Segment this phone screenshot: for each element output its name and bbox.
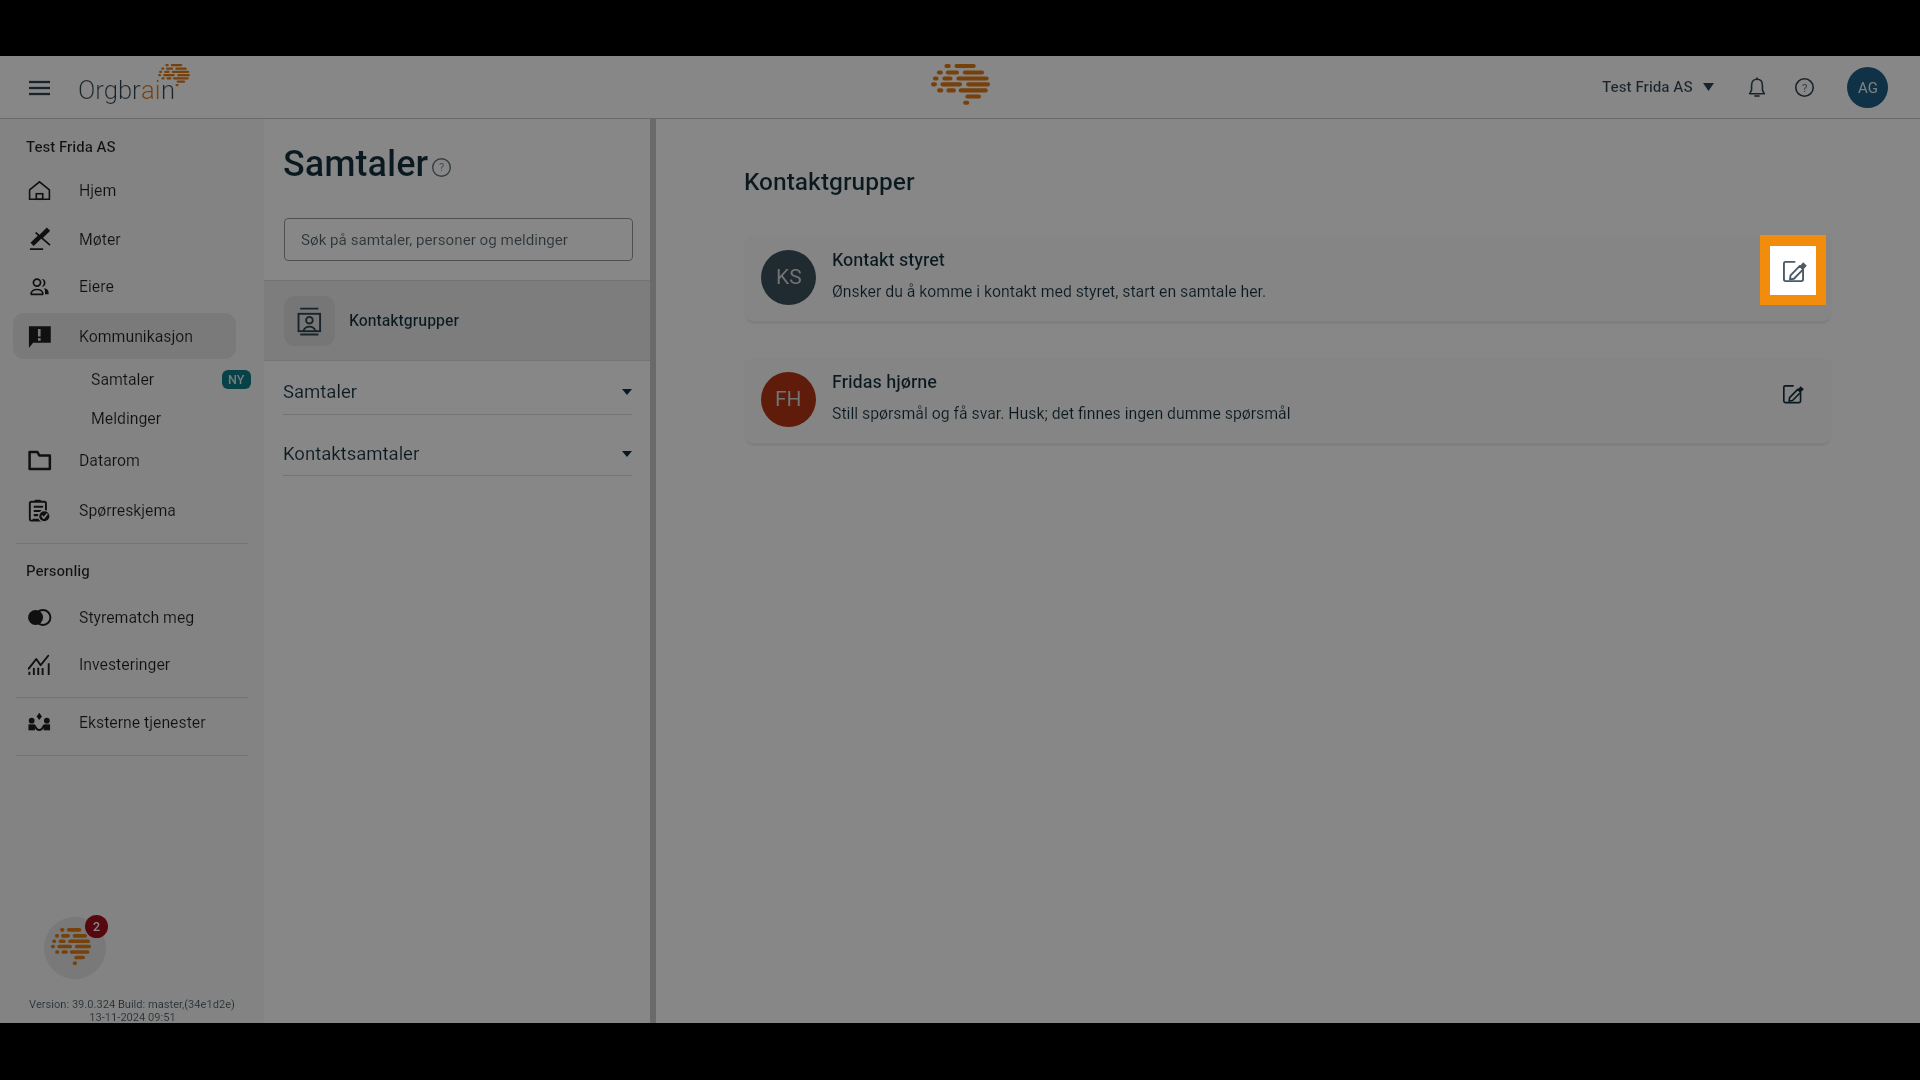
staticText: ai: [141, 75, 161, 105]
button[interactable]: Orgbr: [78, 75, 176, 105]
staticText: Samtaler: [283, 381, 357, 403]
button[interactable]: FH: [744, 358, 1832, 443]
staticText: Eiere: [79, 277, 114, 296]
staticText: Fridas hjørne: [832, 371, 938, 392]
staticText: FH: [775, 387, 802, 412]
button[interactable]: Investeringer: [13, 641, 236, 687]
staticText: Møter: [79, 230, 121, 249]
staticText: Test Frida AS: [26, 138, 116, 156]
staticText: Still spørsmål og få svar. Husk; det fin…: [832, 404, 1291, 423]
staticText: Kommunikasjon: [79, 327, 193, 346]
button[interactable]: Help: [1783, 66, 1826, 109]
staticText: NY: [228, 372, 245, 387]
button[interactable]: Edit contact group: [1773, 375, 1813, 415]
staticText: Samtaler: [283, 143, 429, 185]
staticText: Spørreskjema: [79, 501, 176, 520]
staticText: Kontaktgrupper: [744, 167, 915, 196]
button[interactable]: Datarom: [13, 437, 236, 483]
staticText: Samtaler: [91, 370, 155, 389]
staticText: Kontakt styret: [832, 249, 945, 270]
staticText: Styrematch meg: [79, 608, 195, 627]
staticText: 13-11-2024 09:51: [89, 1011, 176, 1024]
button[interactable]: Kommunikasjon: [13, 313, 236, 359]
button[interactable]: Meldinger: [13, 399, 251, 437]
button[interactable]: Søk på samtaler, personer og meldinger: [284, 218, 633, 261]
button[interactable]: Hjem: [13, 167, 236, 213]
staticText: n: [161, 75, 176, 105]
staticText: Søk på samtaler, personer og meldinger: [301, 231, 569, 249]
staticText: Kontaktgrupper: [349, 311, 459, 330]
button[interactable]: AG: [1847, 67, 1888, 108]
button[interactable]: KS: [744, 236, 1832, 321]
staticText: Datarom: [79, 451, 140, 470]
staticText: Test Frida AS: [1602, 78, 1693, 96]
button[interactable]: Møter: [13, 216, 236, 262]
staticText: Investeringer: [79, 655, 171, 674]
button[interactable]: Kontaktgrupper: [264, 281, 650, 360]
button[interactable]: Samtaler: [13, 360, 251, 398]
staticText: AG: [1858, 79, 1878, 97]
button[interactable]: Orgbrain assistant: [44, 917, 106, 979]
button[interactable]: Edit contact group: [1760, 235, 1826, 305]
button[interactable]: Styrematch meg: [13, 594, 236, 640]
button[interactable]: Samtaler: [283, 373, 632, 411]
staticText: 2: [93, 919, 101, 934]
staticText: Ønsker du å komme i kontakt med styret, …: [832, 282, 1267, 301]
staticText: KS: [776, 265, 802, 290]
button[interactable]: Eksterne tjenester: [13, 699, 236, 745]
staticText: ?: [439, 161, 445, 174]
button[interactable]: Test Frida AS: [1594, 70, 1722, 104]
staticText: Kontaktsamtaler: [283, 443, 420, 465]
button[interactable]: Eiere: [13, 263, 236, 309]
button[interactable]: Kontaktsamtaler: [283, 435, 632, 473]
staticText: Hjem: [79, 181, 117, 200]
staticText: Orgbr: [78, 75, 141, 105]
staticText: ?: [1802, 81, 1808, 94]
staticText: Version: 39.0.324 Build: master,(34e1d2e…: [29, 998, 235, 1011]
staticText: Meldinger: [91, 409, 162, 428]
staticText: Personlig: [26, 562, 90, 580]
button[interactable]: Notifications: [1736, 66, 1778, 108]
button[interactable]: Spørreskjema: [13, 487, 236, 533]
staticText: Eksterne tjenester: [79, 713, 206, 732]
button[interactable]: Open navigation menu: [19, 68, 59, 108]
